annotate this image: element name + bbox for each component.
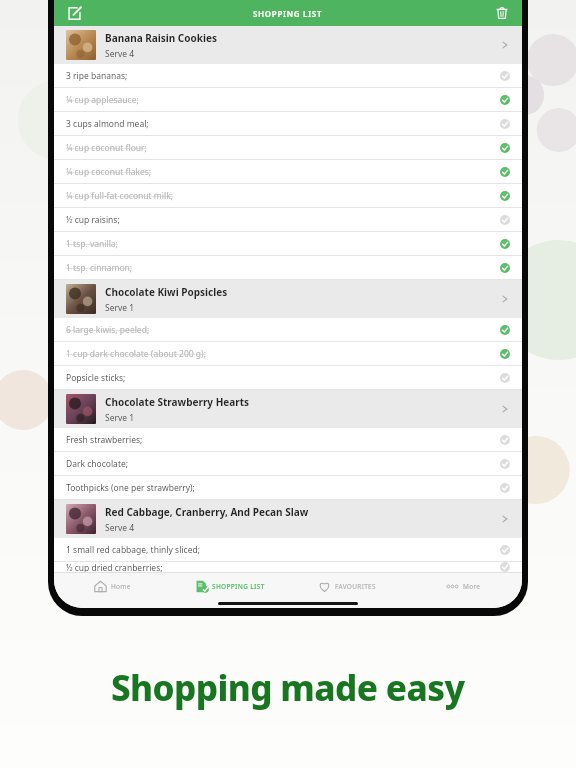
staticText: ¼ cup coconut flour; xyxy=(66,142,500,154)
button[interactable]: Delete list xyxy=(490,1,514,25)
staticText: Serve 4 xyxy=(105,48,135,60)
button[interactable]: ¼ cup coconut flakes; xyxy=(54,160,522,183)
staticText: Home xyxy=(111,582,131,591)
button[interactable]: 6 large kiwis, peeled; xyxy=(54,318,522,341)
staticText: Dark chocolate; xyxy=(66,458,500,470)
button[interactable]: Popsicle sticks; xyxy=(54,366,522,389)
button[interactable]: Edit list xyxy=(62,1,86,25)
staticText: 3 ripe bananas; xyxy=(66,70,500,82)
button[interactable]: More xyxy=(405,573,522,599)
staticText: ¼ cup applesauce; xyxy=(66,94,500,106)
staticText: SHOPPING LIST xyxy=(253,8,323,19)
button[interactable]: Home xyxy=(54,573,171,599)
staticText: Serve 4 xyxy=(105,522,135,534)
staticText: ½ cup dried cranberries; xyxy=(66,562,500,572)
staticText: Fresh strawberries; xyxy=(66,434,500,446)
button[interactable]: 3 ripe bananas; xyxy=(54,64,522,87)
staticText: Shopping made easy xyxy=(111,664,465,712)
button[interactable]: ½ cup raisins; xyxy=(54,208,522,231)
staticText: Serve 1 xyxy=(105,302,135,314)
staticText: ¼ cup full-fat coconut milk; xyxy=(66,190,500,202)
staticText: Popsicle sticks; xyxy=(66,372,500,384)
staticText: 1 tsp. vanilla; xyxy=(66,238,500,250)
button[interactable]: Dark chocolate; xyxy=(54,452,522,475)
staticText: 6 large kiwis, peeled; xyxy=(66,324,500,336)
button[interactable]: 1 tsp. vanilla; xyxy=(54,232,522,255)
staticText: More xyxy=(463,582,481,591)
staticText: ½ cup raisins; xyxy=(66,214,500,226)
button[interactable]: Red Cabbage, Cranberry, And Pecan Slaw xyxy=(54,500,522,538)
button[interactable]: SHOPPING LIST xyxy=(171,573,288,599)
button[interactable]: 1 cup dark chocolate (about 200 g); xyxy=(54,342,522,365)
staticText: 3 cups almond meal; xyxy=(66,118,500,130)
staticText: 1 cup dark chocolate (about 200 g); xyxy=(66,348,500,360)
staticText: ¼ cup coconut flakes; xyxy=(66,166,500,178)
button[interactable]: ¼ cup full-fat coconut milk; xyxy=(54,184,522,207)
button[interactable]: ¼ cup applesauce; xyxy=(54,88,522,111)
button[interactable]: Fresh strawberries; xyxy=(54,428,522,451)
staticText: FAVOURITES xyxy=(335,582,376,591)
button[interactable]: FAVOURITES xyxy=(288,573,405,599)
button[interactable]: 1 tsp. cinnamon; xyxy=(54,256,522,279)
button[interactable]: Toothpicks (one per strawberry); xyxy=(54,476,522,499)
staticText: Red Cabbage, Cranberry, And Pecan Slaw xyxy=(105,505,309,519)
staticText: Serve 1 xyxy=(105,412,135,424)
staticText: 1 small red cabbage, thinly sliced; xyxy=(66,544,500,556)
button[interactable]: 1 small red cabbage, thinly sliced; xyxy=(54,538,522,561)
staticText: 1 tsp. cinnamon; xyxy=(66,262,500,274)
staticText: Chocolate Kiwi Popsicles xyxy=(105,285,228,299)
staticText: Banana Raisin Cookies xyxy=(105,31,217,45)
button[interactable]: ½ cup dried cranberries; xyxy=(54,562,522,572)
staticText: SHOPPING LIST xyxy=(212,582,265,591)
button[interactable]: Chocolate Strawberry Hearts xyxy=(54,390,522,428)
staticText: Toothpicks (one per strawberry); xyxy=(66,482,500,494)
staticText: Chocolate Strawberry Hearts xyxy=(105,395,250,409)
button[interactable]: ¼ cup coconut flour; xyxy=(54,136,522,159)
button[interactable]: Chocolate Kiwi Popsicles xyxy=(54,280,522,318)
button[interactable]: 3 cups almond meal; xyxy=(54,112,522,135)
button[interactable]: Banana Raisin Cookies xyxy=(54,26,522,64)
